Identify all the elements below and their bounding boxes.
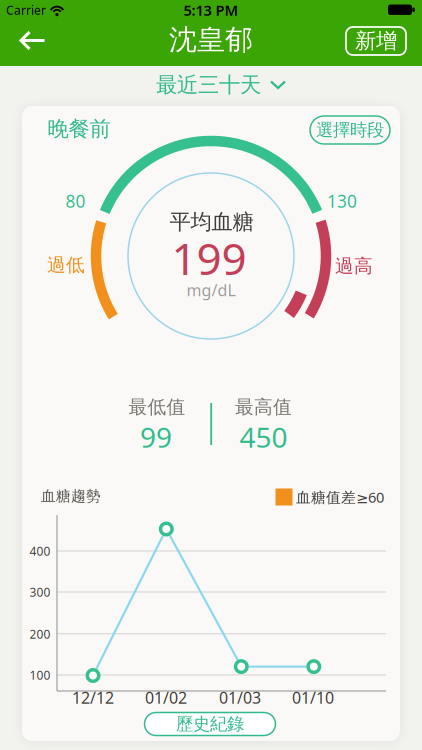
button[interactable]: Back bbox=[19, 30, 45, 50]
staticText: Carrier bbox=[6, 2, 46, 18]
staticText: 100 bbox=[29, 667, 50, 683]
button[interactable]: 最近三十天 bbox=[156, 72, 286, 98]
staticText: 晚餐前 bbox=[47, 116, 110, 142]
staticText: mg/dL bbox=[186, 279, 235, 301]
button[interactable]: 歷史紀錄 bbox=[144, 712, 275, 735]
staticText: 200 bbox=[29, 626, 50, 642]
staticText: 450 bbox=[239, 418, 287, 456]
staticText: 01/10 bbox=[292, 687, 334, 708]
staticText: 01/02 bbox=[145, 687, 187, 708]
staticText: 最低值 bbox=[128, 395, 185, 418]
staticText: 平均血糖 bbox=[169, 209, 253, 235]
staticText: 血糖值差≥60 bbox=[296, 487, 384, 507]
staticText: 最高值 bbox=[235, 395, 292, 418]
staticText: 5:13 PM bbox=[183, 0, 238, 20]
staticText: 最近三十天 bbox=[156, 72, 261, 98]
staticText: 199 bbox=[171, 229, 246, 287]
staticText: 血糖趨勢 bbox=[41, 487, 101, 505]
staticText: 01/03 bbox=[219, 687, 261, 708]
staticText: 新增 bbox=[355, 28, 397, 54]
staticText: 歷史紀錄 bbox=[176, 713, 244, 735]
button[interactable]: 新增 bbox=[346, 27, 406, 55]
staticText: 300 bbox=[29, 584, 50, 600]
staticText: 400 bbox=[29, 543, 50, 559]
staticText: 選擇時段 bbox=[316, 119, 384, 141]
staticText: 99 bbox=[140, 418, 172, 456]
button[interactable]: 選擇時段 bbox=[310, 116, 390, 144]
staticText: 沈皇郁 bbox=[169, 23, 253, 57]
staticText: 過高 bbox=[335, 254, 373, 277]
staticText: 過低 bbox=[47, 253, 85, 276]
staticText: 130 bbox=[327, 189, 357, 212]
staticText: 80 bbox=[65, 189, 85, 212]
staticText: 12/12 bbox=[72, 687, 114, 708]
